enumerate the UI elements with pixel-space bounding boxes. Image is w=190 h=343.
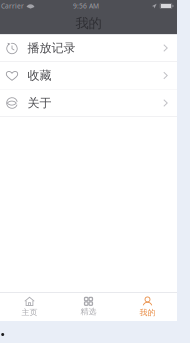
staticText: 9:56 AM bbox=[73, 2, 99, 10]
staticText: 收藏 bbox=[27, 68, 51, 83]
button[interactable]: 收藏 bbox=[0, 62, 177, 89]
button[interactable]: 我的 bbox=[118, 293, 177, 321]
button[interactable]: 主页 bbox=[0, 293, 59, 321]
staticText: 精选 bbox=[80, 307, 96, 317]
staticText: 播放记录 bbox=[27, 41, 75, 55]
button[interactable]: 播放记录 bbox=[0, 34, 177, 62]
staticText: 我的 bbox=[139, 308, 155, 317]
button[interactable]: 关于 bbox=[0, 89, 177, 117]
staticText: 关于 bbox=[27, 96, 51, 110]
staticText: 我的 bbox=[75, 15, 101, 31]
staticText: 主页 bbox=[21, 307, 37, 317]
button[interactable]: 精选 bbox=[59, 293, 118, 321]
staticText: Carrier bbox=[1, 2, 24, 10]
